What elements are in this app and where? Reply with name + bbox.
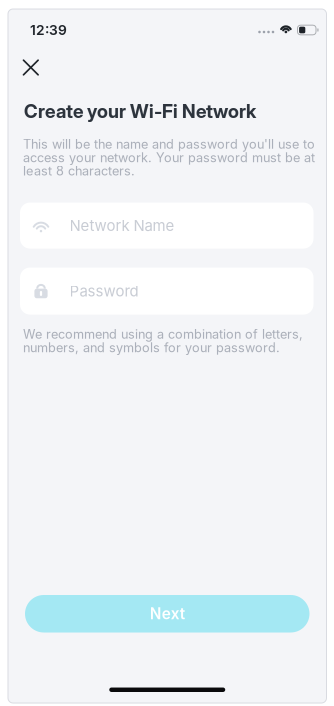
staticText: Network Name: [69, 216, 174, 235]
button[interactable]: Close: [8, 52, 63, 82]
staticText: This will be the name and password you'l…: [23, 137, 315, 179]
staticText: Next: [150, 604, 185, 623]
staticText: Create your Wi-Fi Network: [24, 100, 256, 123]
staticText: 12:39: [30, 22, 67, 38]
staticText: Password: [69, 282, 138, 300]
button[interactable]: Next: [25, 595, 309, 632]
staticText: We recommend using a combination of lett…: [23, 327, 303, 355]
